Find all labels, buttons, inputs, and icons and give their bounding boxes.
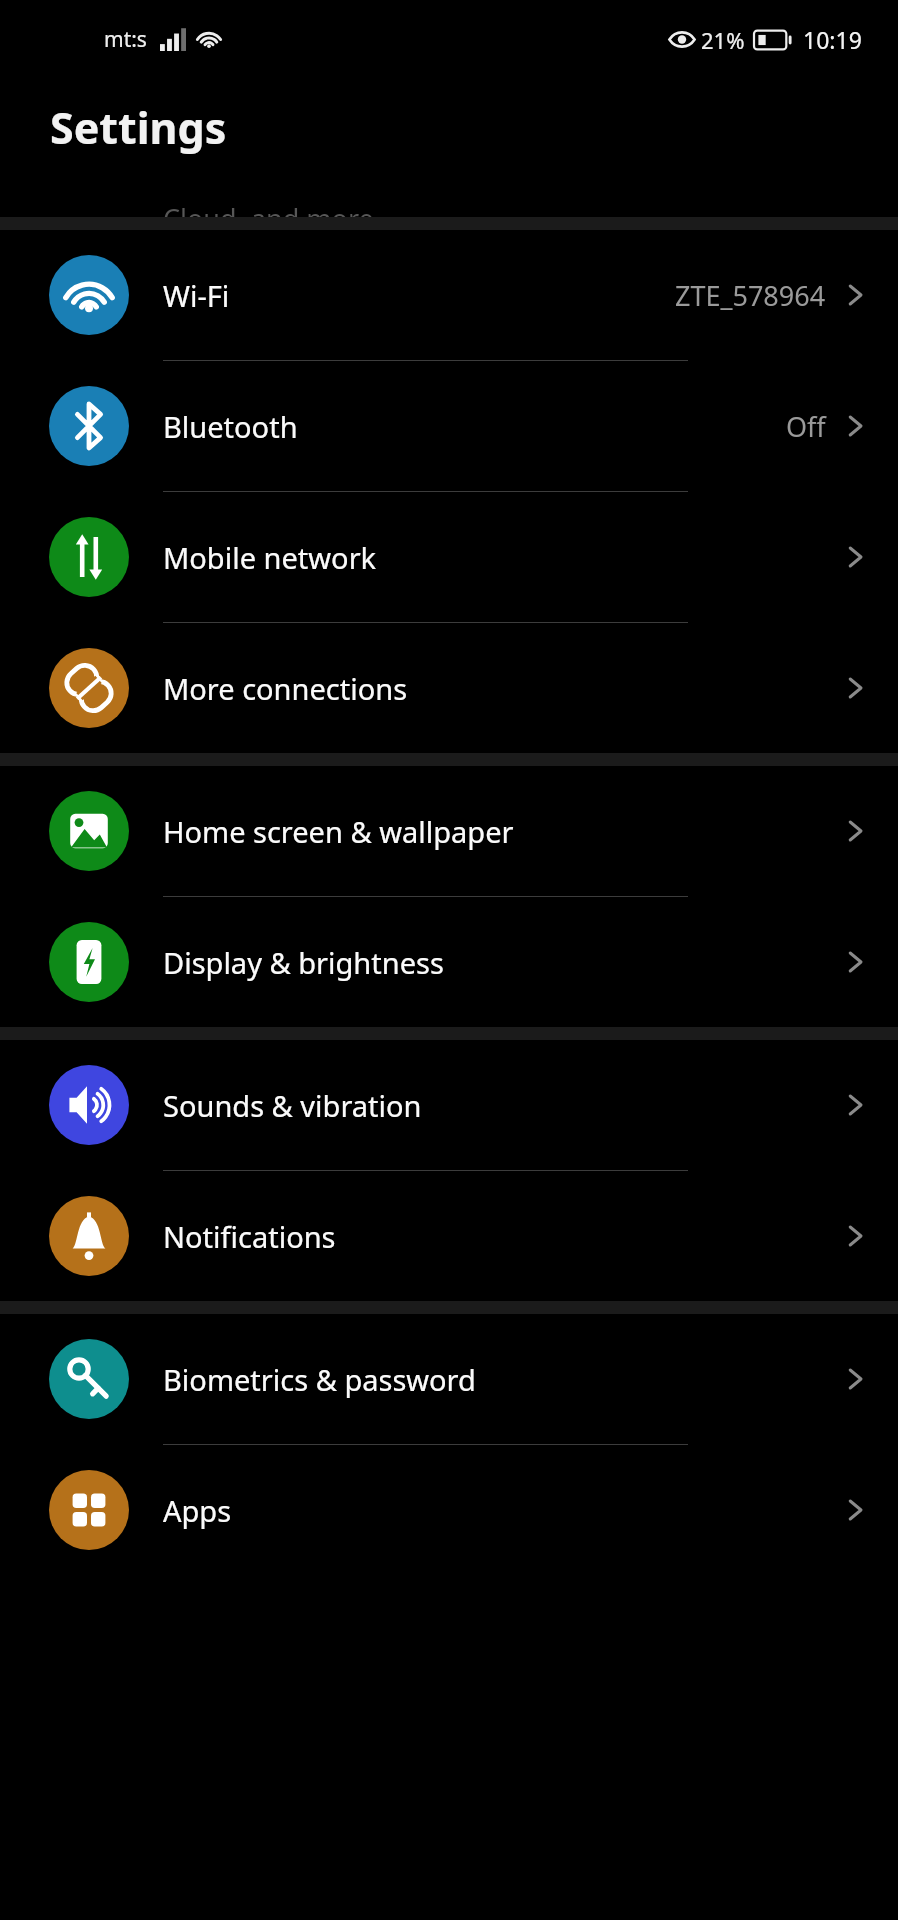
button[interactable]: Bluetooth (0, 361, 898, 491)
staticText: 21% (701, 25, 745, 55)
other: Display and brightness (49, 922, 129, 1002)
other: Wi-Fi (49, 255, 129, 335)
staticText: Mobile network (163, 538, 840, 577)
button[interactable]: Mobile network (0, 492, 898, 622)
button[interactable]: Biometrics and password (0, 1314, 898, 1444)
other: Bluetooth (49, 386, 129, 466)
other: Apps (49, 1470, 129, 1550)
button[interactable]: Notifications (0, 1171, 898, 1301)
other: Mobile network (49, 517, 129, 597)
staticText: Wi-Fi (163, 276, 675, 315)
staticText: More connections (163, 669, 840, 708)
staticText: Display & brightness (163, 943, 840, 982)
staticText: Notifications (163, 1217, 840, 1256)
staticText: Home screen & wallpaper (163, 812, 840, 851)
button[interactable]: Apps (0, 1445, 898, 1575)
staticText: Bluetooth (163, 407, 786, 446)
button[interactable]: Sounds and vibration (0, 1040, 898, 1170)
button[interactable]: More connections (0, 623, 898, 753)
other: Biometrics and password (49, 1339, 129, 1419)
other: More connections (49, 648, 129, 728)
other: Notifications (49, 1196, 129, 1276)
staticText: Settings (50, 98, 227, 157)
button[interactable]: Display and brightness (0, 897, 898, 1027)
staticText: Off (786, 408, 826, 445)
staticText: 10:19 (803, 24, 862, 55)
staticText: Apps (163, 1491, 840, 1530)
staticText: Biometrics & password (163, 1360, 840, 1399)
button[interactable]: Home screen and wallpaper (0, 766, 898, 896)
other: Sounds and vibration (49, 1065, 129, 1145)
button[interactable]: Wi-Fi (0, 230, 898, 360)
staticText: ZTE_578964 (675, 277, 826, 314)
staticText: Cloud, and more (163, 200, 374, 217)
staticText: mt:s (104, 25, 147, 54)
other: Home screen and wallpaper (49, 791, 129, 871)
staticText: Sounds & vibration (163, 1086, 840, 1125)
